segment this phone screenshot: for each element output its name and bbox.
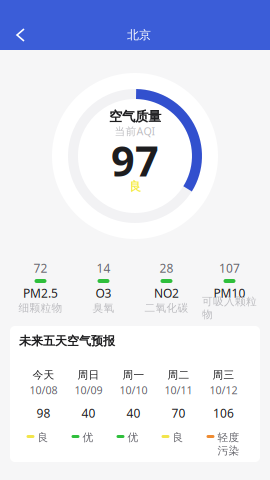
staticText: NO2 — [154, 285, 179, 301]
staticText: 40 — [81, 405, 95, 421]
staticText: 空气质量 — [109, 108, 161, 125]
staticText: 优 — [127, 431, 138, 444]
staticText: 14 — [96, 260, 110, 276]
staticText: 70 — [171, 405, 185, 421]
staticText: 10/12 — [209, 383, 237, 397]
staticText: 28 — [159, 260, 173, 276]
staticText: 周三 — [212, 368, 234, 381]
staticText: 98 — [36, 405, 50, 421]
staticText: 72 — [33, 260, 47, 276]
staticText: 周日 — [77, 368, 99, 381]
staticText: 轻度污染 — [217, 431, 239, 457]
staticText: 10/08 — [29, 383, 57, 397]
staticText: 当前AQI — [114, 124, 155, 138]
staticText: 107 — [219, 260, 240, 276]
staticText: 10/09 — [74, 383, 102, 397]
staticText: 优 — [82, 431, 93, 444]
staticText: O3 — [95, 285, 111, 301]
staticText: 北京 — [127, 28, 151, 42]
staticText: 二氧化碳 — [144, 301, 188, 314]
staticText: 周一 — [122, 368, 144, 381]
staticText: 40 — [126, 405, 140, 421]
staticText: 今天 — [32, 368, 54, 381]
staticText: PM2.5 — [23, 285, 58, 301]
staticText: 未来五天空气预报 — [19, 334, 115, 348]
staticText: 106 — [213, 405, 234, 421]
staticText: 良 — [172, 431, 183, 444]
staticText: 10/11 — [164, 383, 192, 397]
staticText: 97 — [111, 133, 159, 188]
staticText: PM10 — [213, 285, 245, 301]
staticText: 细颗粒物 — [18, 301, 62, 314]
staticText: 周二 — [167, 368, 189, 381]
staticText: 10/10 — [119, 383, 147, 397]
staticText: 良 — [129, 179, 141, 194]
staticText: 臭氧 — [92, 301, 114, 314]
staticText: 良 — [37, 431, 48, 444]
staticText: 可吸入颗粒物 — [202, 295, 257, 321]
button[interactable]: Back — [0, 20, 41, 50]
